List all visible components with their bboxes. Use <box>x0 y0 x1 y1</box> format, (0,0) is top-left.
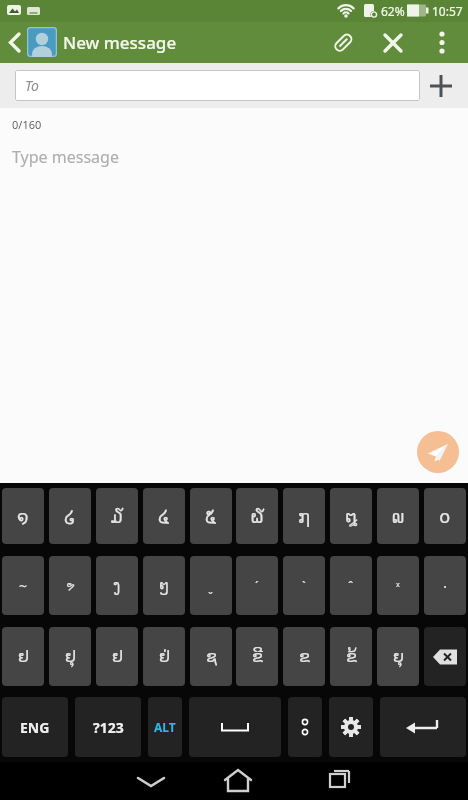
button[interactable]: ຊ <box>190 627 232 686</box>
staticText: ຢ່ <box>159 647 170 666</box>
staticText: ຢຸ <box>65 647 76 666</box>
button[interactable]: ຢ່ <box>143 627 185 686</box>
staticText: ALT <box>154 719 176 735</box>
staticText: ຢ <box>112 647 123 666</box>
staticText: 62% <box>381 3 405 19</box>
button[interactable]: ˋ <box>283 556 325 615</box>
button[interactable] <box>378 28 408 58</box>
button[interactable] <box>424 66 464 106</box>
button[interactable]: ໆ <box>143 556 185 615</box>
button[interactable]: ຍຸ <box>377 627 419 686</box>
button[interactable]: ຂ້ <box>330 627 372 686</box>
button[interactable]: ~ <box>2 556 44 615</box>
button[interactable]: ຂ <box>283 627 325 686</box>
staticText: ໙ <box>392 506 405 527</box>
button[interactable]: · <box>424 556 466 615</box>
staticText: ໆ <box>159 577 170 594</box>
staticText: ໒ <box>64 506 76 527</box>
staticText: ຊ <box>206 647 217 666</box>
button[interactable]: ˬ <box>190 556 232 615</box>
button[interactable]: ຢ <box>2 627 44 686</box>
button[interactable] <box>0 22 28 63</box>
staticText: ˬ <box>208 578 214 594</box>
staticText: Type message <box>12 146 119 168</box>
staticText: ໓ <box>111 506 124 527</box>
button[interactable]: ໓ <box>96 488 138 544</box>
staticText: ຢ <box>18 647 29 666</box>
staticText: ຯ <box>66 579 75 592</box>
button[interactable] <box>329 697 373 757</box>
button[interactable]: ˊ <box>236 556 278 615</box>
button[interactable]: ໒ <box>49 488 91 544</box>
button[interactable]: ALT <box>148 697 182 757</box>
button[interactable] <box>428 22 458 63</box>
button[interactable]: ໖ <box>236 488 278 544</box>
staticText: ~ <box>19 576 28 595</box>
staticText: ຍຸ <box>393 647 404 666</box>
button[interactable]: ຯ <box>49 556 91 615</box>
staticText: ໕ <box>205 506 217 527</box>
button[interactable]: ງ <box>96 556 138 615</box>
staticText: ?123 <box>93 718 124 737</box>
button[interactable] <box>417 431 459 473</box>
button[interactable]: ຂີ <box>236 627 278 686</box>
staticText: ໐ <box>439 506 451 527</box>
button[interactable]: ˆ <box>330 556 372 615</box>
button[interactable]: ຢຸ <box>49 627 91 686</box>
staticText: ໖ <box>251 506 264 527</box>
button[interactable]: ຢ <box>96 627 138 686</box>
staticText: ENG <box>20 718 50 737</box>
button[interactable] <box>328 28 358 58</box>
button[interactable]: ENG <box>2 697 68 757</box>
button[interactable]: ໘ <box>330 488 372 544</box>
staticText: ˋ <box>302 577 306 595</box>
staticText: 0/160 <box>12 117 42 132</box>
staticText: ໗ <box>298 506 311 527</box>
staticText: ˣ <box>396 578 400 593</box>
button[interactable] <box>288 697 322 757</box>
button[interactable] <box>380 697 466 757</box>
button[interactable] <box>121 762 181 800</box>
staticText: ໑ <box>17 506 29 527</box>
button[interactable] <box>208 762 268 800</box>
staticText: · <box>443 576 448 596</box>
button[interactable] <box>424 627 466 686</box>
staticText: New message <box>63 31 177 54</box>
button[interactable]: ໗ <box>283 488 325 544</box>
staticText: ໘ <box>345 506 358 527</box>
button[interactable]: ໙ <box>377 488 419 544</box>
staticText: ˊ <box>255 577 259 595</box>
button[interactable]: ໑ <box>2 488 44 544</box>
button[interactable] <box>306 762 366 800</box>
staticText: 10:57 <box>432 3 463 19</box>
button[interactable]: ໔ <box>143 488 185 544</box>
staticText: To <box>25 76 39 95</box>
staticText: ຂີ <box>252 647 263 666</box>
staticText: ຂ້ <box>346 647 357 666</box>
button[interactable]: ໐ <box>424 488 466 544</box>
button[interactable]: ˣ <box>377 556 419 615</box>
button[interactable] <box>189 697 281 757</box>
staticText: ໔ <box>158 506 170 527</box>
button[interactable]: ໕ <box>190 488 232 544</box>
button[interactable]: To <box>15 70 420 101</box>
staticText: ງ <box>113 577 121 594</box>
staticText: ˆ <box>348 577 354 595</box>
staticText: ຂ <box>299 647 310 666</box>
button[interactable]: ?123 <box>75 697 141 757</box>
